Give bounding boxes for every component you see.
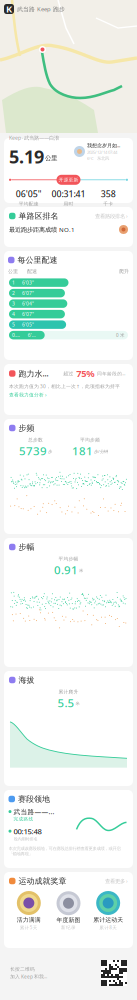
staticText: 00:31:41 [51,188,85,200]
staticText: 06'05" [16,188,42,200]
staticText: 6'04" [22,300,34,307]
staticText: 段内用时排名 [13,836,37,842]
staticText: 步幅 [18,542,34,552]
staticText: 本次跑力值为 30，相比上一次↑，此项指标为持平 [9,383,120,389]
staticText: 5 [12,321,15,328]
staticText: 累计5天 [20,924,38,931]
staticText: 6°C [87,155,94,161]
staticText: 5739 [19,443,47,459]
staticText: 超过 [63,370,73,377]
staticText: 6'05" [22,321,34,328]
staticText: 总步数 [28,437,43,443]
staticText: 新纪录 [61,925,76,930]
staticText: 加入 Keep 和我一起跑步 [10,973,47,980]
button[interactable]: 单路区排名 [4,207,133,247]
button[interactable]: 查看我力值分析 › [9,391,128,398]
staticText: 赛段领地 [18,794,50,804]
staticText: 0 米 [116,332,125,338]
staticText: 2 [12,290,15,297]
staticText: 活力满满 [17,916,41,923]
staticText: 武当路 Keep 跑步 [17,5,65,13]
staticText: 00:15:48 [13,826,41,836]
staticText: K [6,3,12,15]
staticText: 3 [12,300,15,307]
staticText: 6'07" [22,311,34,318]
staticText: 平均步频 [80,437,100,443]
staticText: 358 [101,188,116,200]
staticText: 6'42" [28,332,37,339]
staticText: 海拔 [18,675,34,685]
staticText: 查看我力值分析 › [9,391,46,398]
staticText: 累计爬升 [58,689,78,695]
staticText: 东北风 [97,156,109,161]
button[interactable]: 年度新图 [49,891,88,930]
staticText: 查看更多 › [105,877,128,885]
staticText: 运动成就奖章 [18,876,66,886]
staticText: 配速 [27,268,37,274]
staticText: 75% [76,367,94,380]
staticText: 5.19 [9,144,44,169]
staticText: 米 [75,701,79,706]
staticText: 本次完成该赛段领地，可在赛段总排行榜查看更多成绩，或开启 「领地再现」 [8,846,120,857]
staticText: 6'03" [22,279,34,286]
staticText: 武当路——白浪 [13,807,56,816]
button[interactable]: 活力满满 [9,891,49,931]
staticText: 累计运动天 [93,916,123,923]
staticText: 4 [12,311,15,318]
staticText: 同年龄段的男性跑者 [97,370,128,377]
staticText: 步/分钟 [94,448,108,454]
staticText: 5.5 [57,695,74,711]
staticText: 最近跑步距离成绩 NO.1 [9,225,75,234]
staticText: 完成路线 [13,816,33,822]
staticText: 平均步幅 [58,556,78,562]
staticText: 米 [79,568,83,573]
staticText: 我想念岁月如歌 [87,142,120,149]
staticText: 公里 [8,268,18,274]
button[interactable]: 我想念岁月如歌 [74,140,128,162]
staticText: 6'07" [22,290,34,297]
staticText: 2025/12/14 07:44 [87,149,117,155]
staticText: 用时 [63,201,73,207]
staticText: 每公里配速 [17,255,57,265]
staticText: 1 [12,279,15,286]
staticText: 爬升 [119,268,129,274]
staticText: 公里 [45,154,57,162]
staticText: 步 [48,449,52,454]
staticText: 0.91 [54,562,78,578]
staticText: 累计8天 [99,924,117,931]
staticText: 开源至新 [58,177,78,183]
staticText: 平均配速 [19,201,39,207]
staticText: Keep · 武当路——白浪 [9,134,59,141]
staticText: 千卡 [103,201,113,207]
staticText: 查看路段排名 › [95,212,128,220]
staticText: 步频 [18,423,34,433]
staticText: 单路区排名 [18,211,58,221]
staticText: 长按二维码 [10,966,35,972]
button[interactable]: 累计运动天 [88,891,128,931]
staticText: 0.19 [12,332,21,339]
staticText: 181 [72,443,93,459]
staticText: 年度新图 [56,916,80,924]
staticText: 跑力水平 [18,368,49,379]
